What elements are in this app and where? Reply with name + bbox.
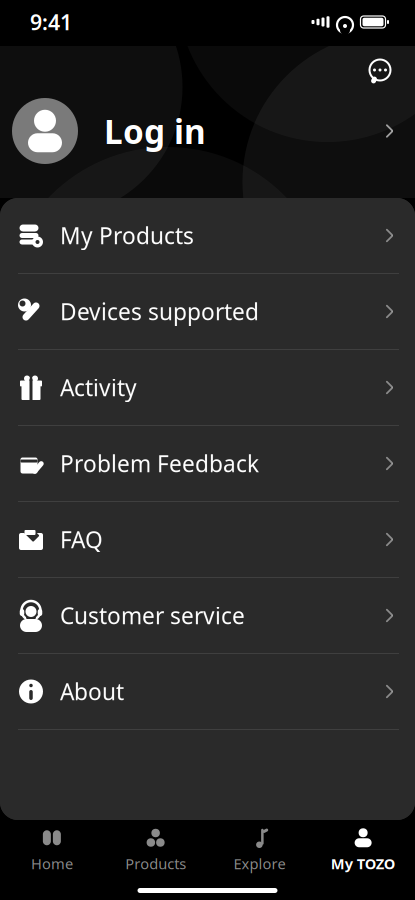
button[interactable]: Products xyxy=(104,826,208,874)
button[interactable]: Customer service xyxy=(0,578,415,653)
staticText: FAQ xyxy=(60,524,103,554)
button[interactable]: Messages xyxy=(360,52,400,88)
button[interactable]: About xyxy=(0,654,415,729)
staticText: About xyxy=(60,676,124,706)
staticText: 9:41 xyxy=(30,8,72,36)
button[interactable]: Explore xyxy=(207,826,311,874)
button[interactable]: My Products xyxy=(0,198,415,273)
staticText: Log in xyxy=(104,109,206,153)
button[interactable]: Devices supported xyxy=(0,274,415,349)
staticText: Home xyxy=(31,854,73,873)
button[interactable]: Home xyxy=(0,826,104,874)
button[interactable]: Activity xyxy=(0,350,415,425)
staticText: My Products xyxy=(60,220,194,250)
button[interactable]: Log in xyxy=(0,88,415,174)
staticText: My TOZO xyxy=(331,854,396,873)
staticText: Customer service xyxy=(60,600,245,630)
staticText: Products xyxy=(125,854,186,873)
button[interactable]: Problem Feedback xyxy=(0,426,415,501)
staticText: Explore xyxy=(233,854,285,873)
button[interactable]: My TOZO xyxy=(311,826,415,874)
staticText: Devices supported xyxy=(60,296,259,326)
button[interactable]: FAQ xyxy=(0,502,415,577)
staticText: Problem Feedback xyxy=(60,448,259,478)
staticText: Activity xyxy=(60,372,137,402)
